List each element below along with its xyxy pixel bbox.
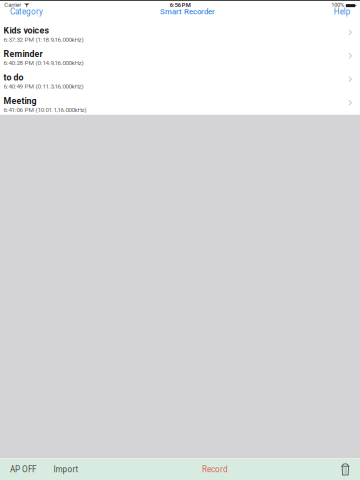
button[interactable]: to do xyxy=(0,68,360,91)
staticText: Help xyxy=(334,7,351,16)
button[interactable]: Reminder xyxy=(0,44,360,68)
staticText: Carrier xyxy=(4,2,21,8)
staticText: 6:56 PM xyxy=(170,2,191,8)
button[interactable]: Record xyxy=(193,459,237,480)
button[interactable]: Meeting xyxy=(0,91,360,115)
staticText: Kids voices xyxy=(4,25,50,36)
staticText: to do xyxy=(4,72,24,83)
button[interactable]: Import xyxy=(45,459,88,480)
button[interactable]: Kids voices xyxy=(0,21,360,44)
staticText: 6:40:28 PM (0:14.9,16.000kHz) xyxy=(4,59,84,67)
button[interactable]: Category xyxy=(0,6,49,17)
staticText: 6:41:06 PM (10:01.1,16.000kHz) xyxy=(4,106,87,114)
staticText: Reminder xyxy=(4,49,43,59)
staticText: Category xyxy=(10,7,43,16)
button[interactable]: AP OFF xyxy=(0,459,45,480)
button[interactable]: Help xyxy=(328,6,360,17)
staticText: 100% xyxy=(331,2,344,8)
staticText: 6:40:49 PM (0:11.3,16.000kHz) xyxy=(4,83,84,90)
staticText: AP OFF xyxy=(10,465,36,474)
button[interactable]: Delete xyxy=(332,459,360,480)
staticText: Meeting xyxy=(4,96,37,106)
staticText: Import xyxy=(54,465,79,474)
staticText: Record xyxy=(202,465,228,474)
staticText: Smart Recorder xyxy=(160,7,215,16)
staticText: 6:37:32 PM (1:18.9,16.000kHz) xyxy=(4,36,84,43)
